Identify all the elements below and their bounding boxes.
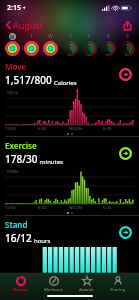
staticText: 2:15 <box>7 3 21 13</box>
staticText: minutes <box>40 158 63 166</box>
button[interactable]: Day 1 <box>3 41 21 56</box>
staticText: August <box>13 19 43 31</box>
staticText: T <box>30 33 33 40</box>
staticText: Workouts <box>44 287 63 293</box>
staticText: 15MIN <box>6 169 18 174</box>
staticText: Awards <box>79 287 94 293</box>
staticText: Sharing <box>110 287 126 293</box>
staticText: 6:00 <box>38 126 47 132</box>
staticText: Stand <box>5 219 28 230</box>
staticText: 6:00 <box>103 205 112 211</box>
button[interactable]: August <box>5 18 44 32</box>
button[interactable]: Move details <box>118 67 133 82</box>
staticText: F <box>88 33 91 40</box>
staticText: Calories <box>54 79 77 87</box>
staticText: 178/30 <box>5 152 38 166</box>
staticText: S <box>126 33 129 40</box>
button[interactable]: Exercise details <box>118 146 133 161</box>
button[interactable]: Exercise <box>0 137 139 168</box>
button[interactable]: Day 5 <box>80 41 98 56</box>
button[interactable]: Awards <box>76 275 97 294</box>
staticText: 16/12 <box>5 231 32 245</box>
staticText: NOON <box>69 126 82 132</box>
staticText: W <box>48 33 53 40</box>
staticText: Move <box>5 61 27 72</box>
staticText: T <box>69 33 72 40</box>
staticText: 6:00 <box>103 126 112 132</box>
button[interactable]: Day 7 <box>118 41 136 56</box>
staticText: S <box>107 33 110 40</box>
button[interactable]: Sharing <box>107 275 129 294</box>
staticText: 6:00 <box>38 205 47 211</box>
button[interactable]: Workouts <box>41 275 66 294</box>
button[interactable]: Day 4 <box>61 41 79 56</box>
button[interactable]: Day 2 <box>22 41 40 56</box>
staticText: History <box>13 287 28 293</box>
button[interactable]: History <box>10 275 31 294</box>
staticText: 12:00 <box>5 205 16 211</box>
staticText: 1,517/800 <box>5 73 52 87</box>
button[interactable]: Stand <box>0 216 139 247</box>
staticText: M <box>10 34 15 40</box>
staticText: hours <box>34 237 51 245</box>
staticText: NOON <box>69 205 82 211</box>
button[interactable]: Day 3 <box>41 41 59 56</box>
staticText: 12:00 <box>5 126 16 132</box>
staticText: 136Cal <box>6 90 19 95</box>
button[interactable]: Share <box>120 18 134 32</box>
button[interactable]: Stand details <box>118 225 133 240</box>
staticText: Exercise <box>5 140 37 151</box>
button[interactable]: Move <box>0 58 139 89</box>
button[interactable]: Day 6 <box>99 41 117 56</box>
